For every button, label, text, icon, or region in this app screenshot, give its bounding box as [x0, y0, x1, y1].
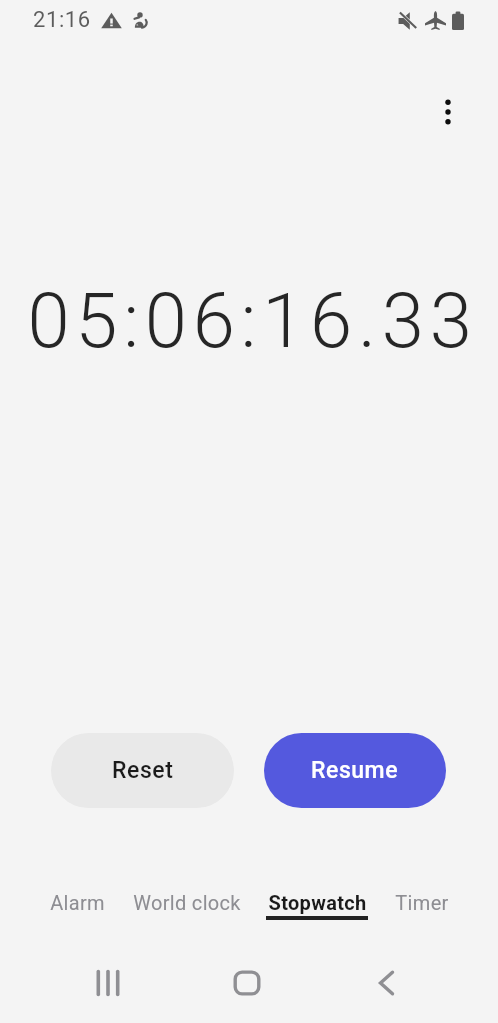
button[interactable]: World clock	[133, 891, 241, 914]
button[interactable]: Timer	[394, 891, 449, 914]
staticText: Resume	[311, 757, 399, 784]
button[interactable]: Stopwatch	[266, 891, 368, 920]
button[interactable]: Reset	[51, 733, 234, 808]
staticText: Stopwatch	[268, 891, 367, 914]
button[interactable]: Back	[358, 955, 414, 1011]
button[interactable]: Resume	[264, 733, 446, 808]
staticText: World clock	[133, 891, 241, 914]
button[interactable]: More options	[424, 88, 472, 136]
button[interactable]: Recent apps	[80, 955, 136, 1011]
staticText: Timer	[395, 891, 449, 914]
staticText: 05:06:16.33	[27, 276, 478, 365]
staticText: Reset	[112, 757, 174, 784]
staticText: Alarm	[50, 891, 104, 914]
button[interactable]: Home	[219, 955, 275, 1011]
staticText: 21:16	[33, 7, 91, 33]
button[interactable]: Alarm	[50, 891, 104, 914]
